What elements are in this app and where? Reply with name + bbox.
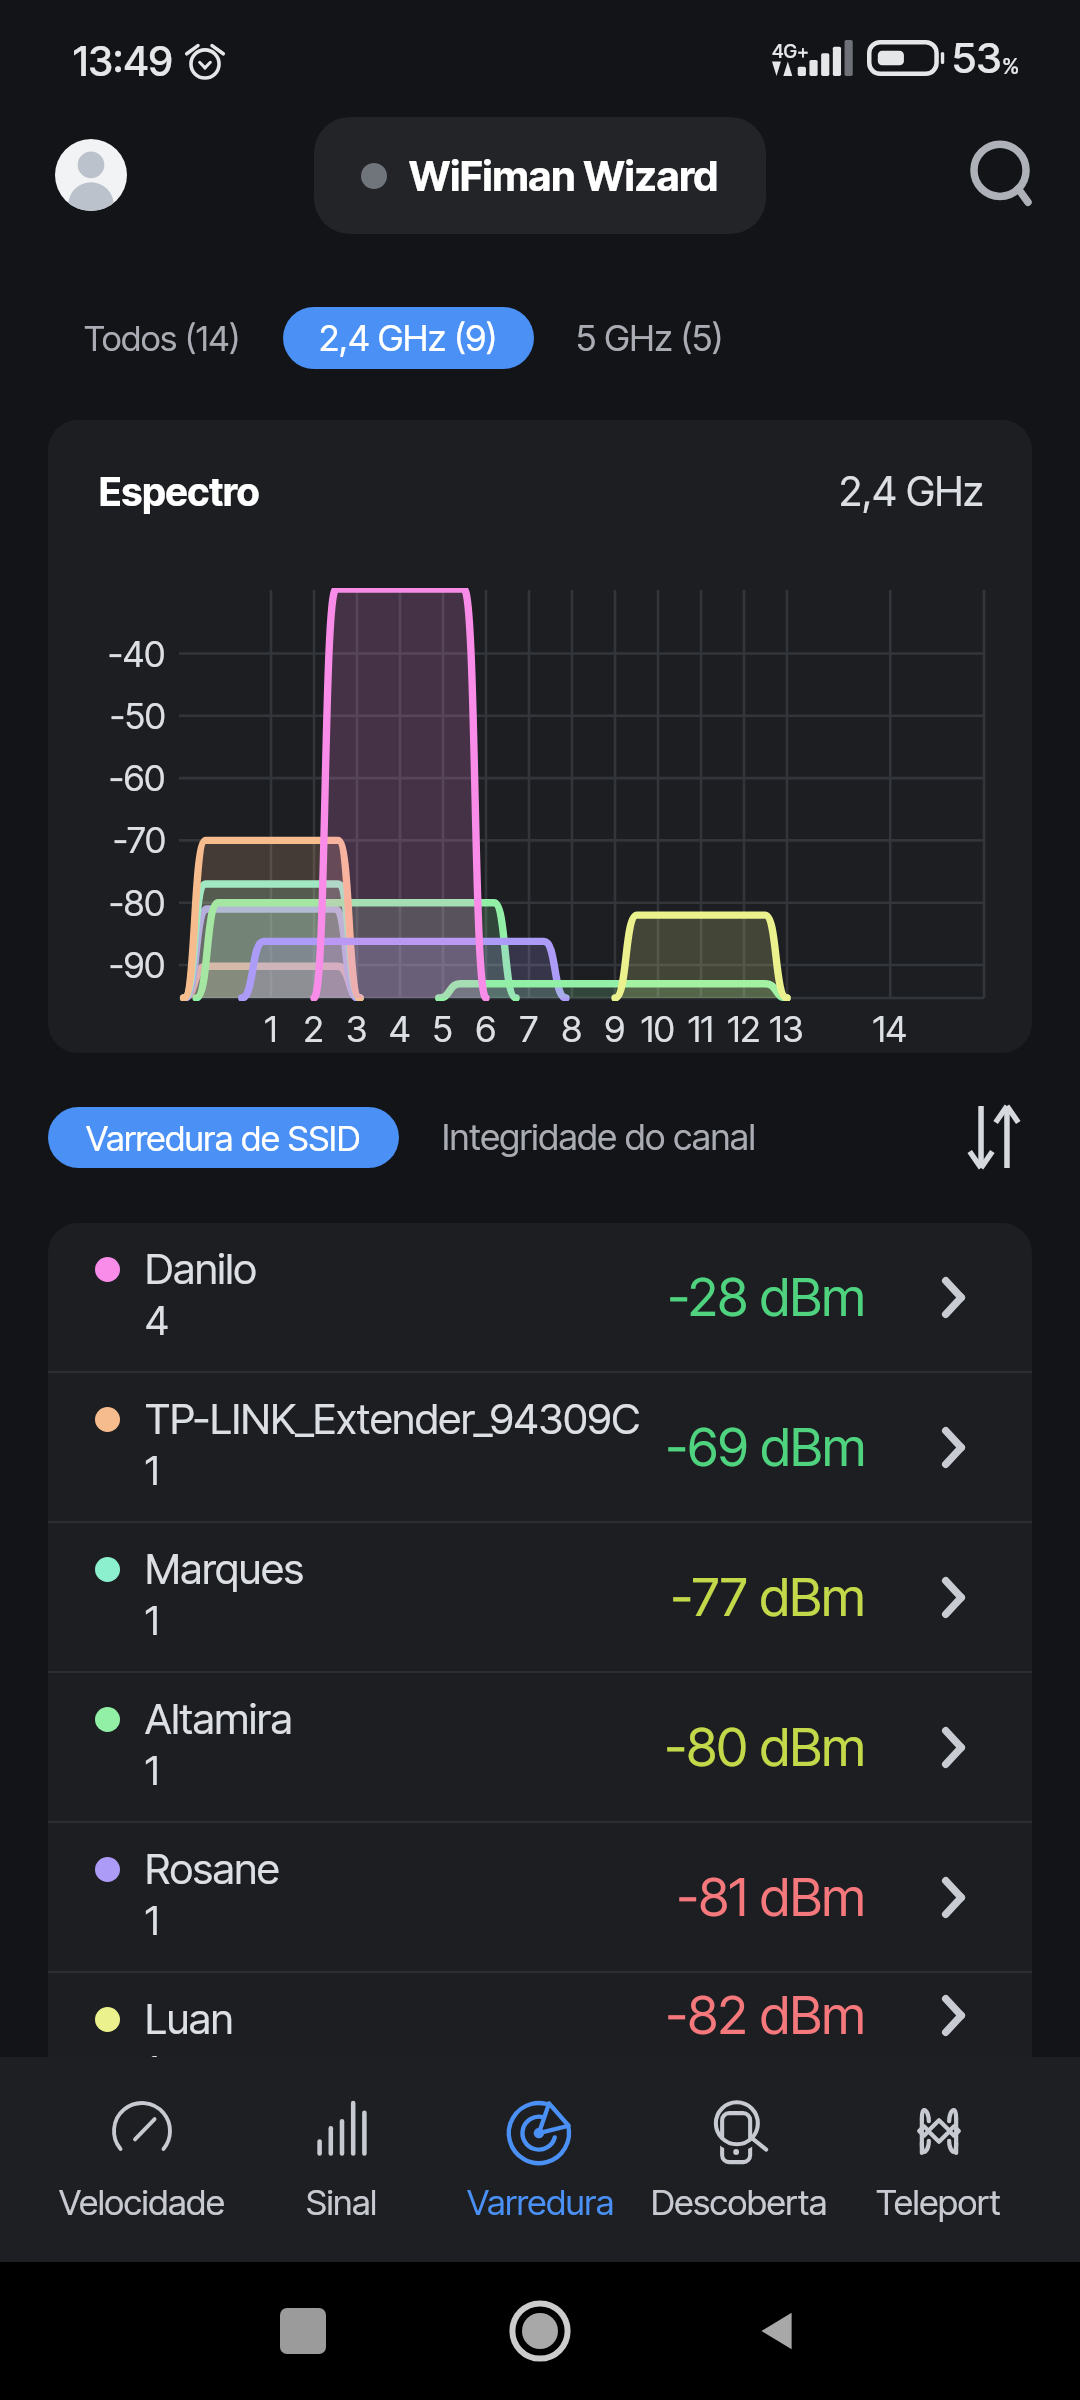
staticText: 13:49 bbox=[73, 36, 173, 86]
staticText: Teleport bbox=[876, 2181, 1001, 2223]
button[interactable]: Integridade do canal bbox=[442, 1115, 756, 1159]
staticText: Velocidade bbox=[59, 2181, 225, 2223]
staticText: 1 bbox=[145, 1896, 160, 1944]
staticText: -80 dBm bbox=[665, 1715, 866, 1779]
button[interactable]: Home bbox=[510, 2301, 570, 2361]
button[interactable]: Search bbox=[950, 125, 1050, 225]
button[interactable]: Danilo bbox=[48, 1223, 1032, 1371]
staticText: Luan bbox=[145, 1993, 234, 2044]
button[interactable]: Velocidade bbox=[42, 2057, 242, 2262]
button[interactable]: Marques bbox=[48, 1523, 1032, 1671]
staticText: 1 bbox=[145, 1596, 160, 1644]
button[interactable]: Luan bbox=[48, 1973, 1032, 2057]
button[interactable]: 5 GHz (5) bbox=[576, 316, 724, 360]
staticText: 1 bbox=[145, 2046, 160, 2057]
button[interactable]: Rosane bbox=[48, 1823, 1032, 1971]
button[interactable]: Varredura bbox=[441, 2057, 640, 2262]
staticText: 2,4 GHz (9) bbox=[319, 316, 498, 360]
button[interactable]: Todos (14) bbox=[84, 317, 241, 359]
staticText: 1 bbox=[145, 1446, 160, 1494]
staticText: % bbox=[1002, 53, 1020, 80]
staticText: -28 dBm bbox=[668, 1265, 866, 1329]
staticText: TP-LINK_Extender_94309C bbox=[145, 1393, 641, 1444]
staticText: -81 dBm bbox=[677, 1865, 866, 1929]
button[interactable]: Varredura de SSID bbox=[48, 1107, 399, 1168]
staticText: 4 bbox=[145, 1296, 169, 1344]
staticText: Altamira bbox=[145, 1693, 293, 1744]
staticText: Rosane bbox=[145, 1843, 280, 1894]
staticText: Descoberta bbox=[651, 2181, 828, 2223]
staticText: Varredura bbox=[467, 2181, 615, 2223]
staticText: 1 bbox=[145, 1746, 160, 1794]
button[interactable]: Profile bbox=[55, 139, 127, 211]
staticText: 2,4 GHz bbox=[839, 466, 984, 516]
staticText: Danilo bbox=[145, 1243, 257, 1294]
button[interactable]: Back bbox=[750, 2305, 802, 2357]
button[interactable]: Sort bbox=[952, 1095, 1036, 1179]
button[interactable]: Sinal bbox=[242, 2057, 441, 2262]
button[interactable]: 2,4 GHz (9) bbox=[283, 307, 534, 369]
button[interactable]: Recent apps bbox=[280, 2308, 326, 2354]
staticText: Marques bbox=[145, 1543, 304, 1594]
button[interactable]: TP-LINK_Extender_94309C bbox=[48, 1373, 1032, 1521]
button[interactable]: Altamira bbox=[48, 1673, 1032, 1821]
staticText: -77 dBm bbox=[671, 1565, 866, 1629]
staticText: -69 dBm bbox=[666, 1415, 866, 1479]
staticText: Sinal bbox=[306, 2181, 377, 2223]
staticText: -82 dBm bbox=[666, 1983, 866, 2047]
staticText: 53 bbox=[952, 32, 1002, 83]
button[interactable]: Teleport bbox=[839, 2057, 1038, 2262]
button[interactable]: Descoberta bbox=[640, 2057, 839, 2262]
staticText: WiFiman Wizard bbox=[409, 151, 719, 201]
staticText: 4G+ bbox=[772, 40, 809, 63]
staticText: Espectro bbox=[99, 468, 260, 515]
button[interactable]: WiFiman Wizard bbox=[314, 117, 766, 234]
staticText: Varredura de SSID bbox=[86, 1117, 361, 1159]
